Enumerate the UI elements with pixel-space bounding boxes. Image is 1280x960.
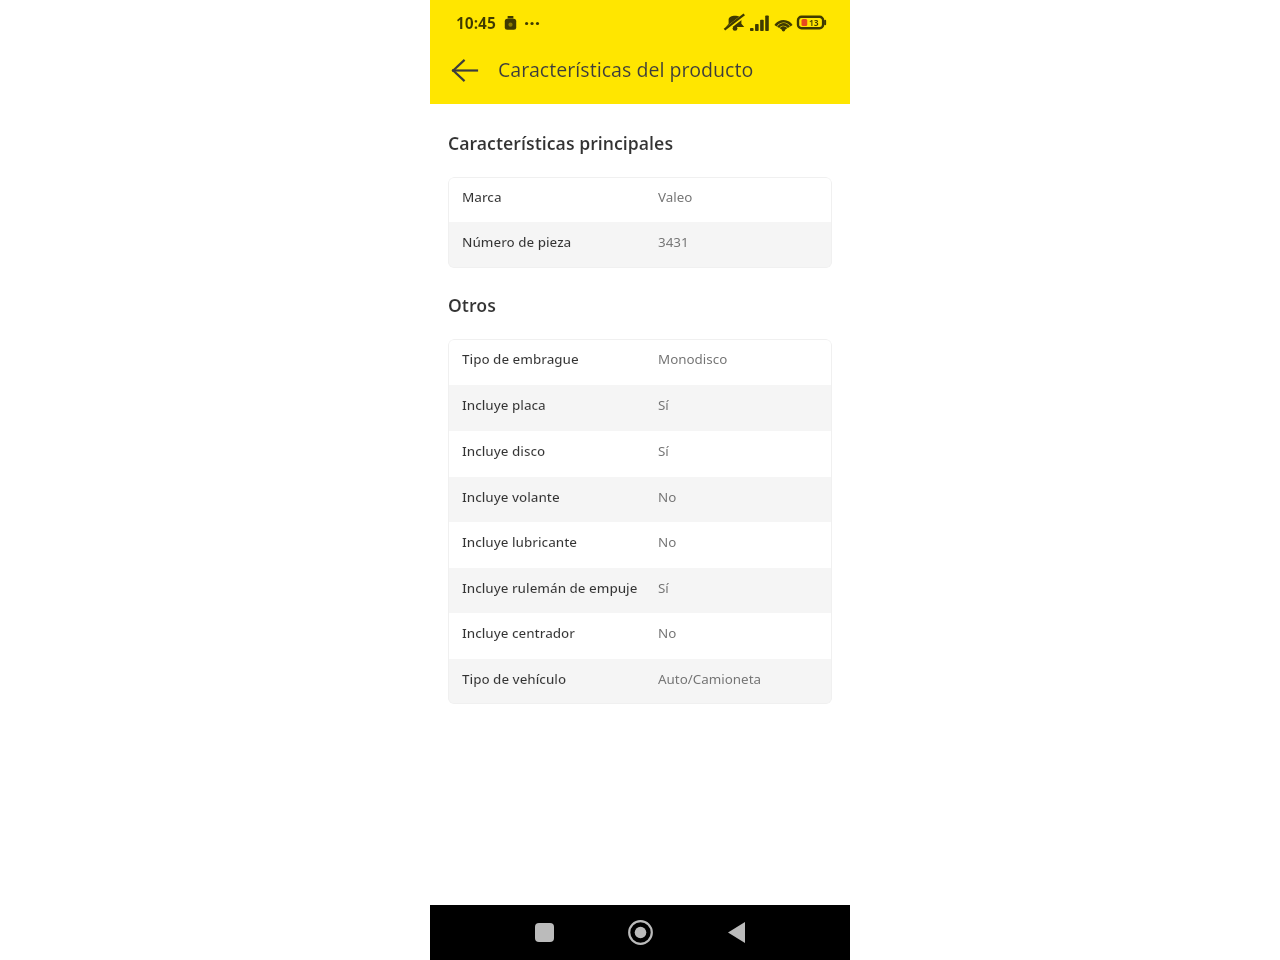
button[interactable]: Tipo de vehículo — [448, 659, 832, 704]
staticText: Sí — [658, 442, 669, 460]
button[interactable]: Incluye rulemán de empuje — [448, 568, 832, 613]
button[interactable]: Incluye lubricante — [448, 522, 832, 568]
staticText: Auto/Camioneta — [658, 670, 761, 688]
staticText: No — [658, 533, 677, 551]
staticText: Incluye volante — [462, 488, 658, 506]
staticText: Incluye disco — [462, 442, 658, 460]
button[interactable]: Incluye disco — [448, 431, 832, 477]
staticText: 13 — [809, 17, 819, 29]
staticText: Monodisco — [658, 350, 728, 368]
button[interactable]: Número de pieza — [448, 222, 832, 268]
button[interactable]: Incluye volante — [448, 477, 832, 522]
staticText: Tipo de embrague — [462, 350, 658, 368]
staticText: Otros — [448, 293, 496, 317]
staticText: Incluye lubricante — [462, 533, 658, 551]
button[interactable]: Recent apps — [496, 905, 592, 960]
button[interactable]: Incluye placa — [448, 385, 832, 431]
staticText: No — [658, 624, 677, 642]
staticText: Incluye placa — [462, 396, 658, 414]
staticText: Incluye rulemán de empuje — [462, 579, 658, 597]
staticText: Número de pieza — [462, 233, 658, 251]
button[interactable]: Back — [688, 905, 784, 960]
staticText: Valeo — [658, 188, 693, 206]
staticText: Características principales — [448, 131, 674, 155]
button[interactable]: Back — [442, 48, 486, 92]
staticText: 10:45 — [456, 12, 496, 33]
staticText: 3431 — [658, 233, 689, 251]
staticText: Sí — [658, 579, 669, 597]
button[interactable]: Home — [592, 905, 688, 960]
staticText: Incluye centrador — [462, 624, 658, 642]
staticText: Tipo de vehículo — [462, 670, 658, 688]
button[interactable]: Tipo de embrague — [448, 339, 832, 385]
staticText: Características del producto — [498, 56, 754, 83]
button[interactable]: Incluye centrador — [448, 613, 832, 659]
staticText: Sí — [658, 396, 669, 414]
staticText: No — [658, 488, 677, 506]
button[interactable]: Marca — [448, 177, 832, 222]
staticText: Marca — [462, 188, 658, 206]
